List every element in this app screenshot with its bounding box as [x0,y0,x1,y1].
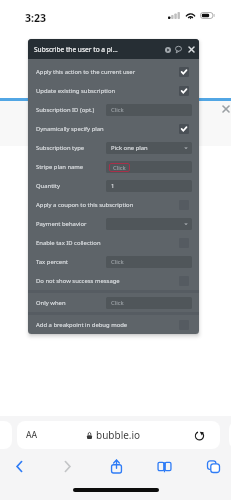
button[interactable]: Only when [106,297,192,309]
staticText: 1 [111,182,115,190]
button[interactable]: Apply a coupon to this subscription [28,195,199,214]
staticText: Pick one plan [111,144,148,152]
staticText: Enable tax ID collection [36,239,101,247]
button[interactable]: Add a breakpoint in debug mode [28,315,199,334]
button[interactable]: Address bar bubble.io [17,421,220,449]
staticText: Subscribe the user to a pl… [34,45,118,54]
staticText: AA [26,429,38,441]
button[interactable]: Forward [56,455,78,477]
staticText: Quantity [36,182,60,190]
staticText: Click [111,106,124,114]
staticText: Click [111,258,124,266]
staticText: Click [113,164,126,172]
button[interactable]: Bookmarks [153,455,175,477]
button[interactable]: Subscription type [106,142,192,154]
button[interactable]: Apply this action to the current user [28,62,199,81]
button[interactable]: Tax percent [106,256,192,268]
button[interactable]: Update existing subscription [28,81,199,100]
staticText: Subscription ID (opt.) [36,106,95,114]
staticText: bubble.io [96,428,141,442]
staticText: Apply a coupon to this subscription [36,201,134,209]
staticText: 3:23 [25,11,46,25]
button[interactable]: Back [8,455,30,477]
button[interactable]: Dismiss banner [220,103,231,114]
button[interactable]: Close dialog [185,43,198,56]
button[interactable]: Comments [172,43,185,56]
staticText: Only when [36,299,66,307]
staticText: Dynamically specify plan [36,125,104,133]
button[interactable]: Run action [161,43,174,56]
staticText: Update existing subscription [36,87,116,95]
staticText: Subscription type [36,144,85,152]
button[interactable]: Stripe plan name [106,161,192,173]
button[interactable]: Dynamically specify plan [28,119,199,138]
staticText: Add a breakpoint in debug mode [36,321,128,329]
staticText: Payment behavior [36,220,87,228]
button[interactable]: Subscription ID (opt.) [106,104,192,116]
staticText: Apply this action to the current user [36,68,136,76]
staticText: Do not show success message [36,277,120,285]
button[interactable]: Quantity [106,180,192,192]
staticText: Tax percent [36,258,68,266]
button[interactable]: Tabs [202,455,224,477]
staticText: Stripe plan name [36,163,84,171]
button[interactable]: Share [105,455,127,477]
button[interactable]: Reload [193,429,206,442]
staticText: Click [111,299,124,307]
button[interactable]: Payment behavior [106,218,192,230]
button[interactable]: Enable tax ID collection [28,233,199,252]
button[interactable]: Do not show success message [28,271,199,290]
